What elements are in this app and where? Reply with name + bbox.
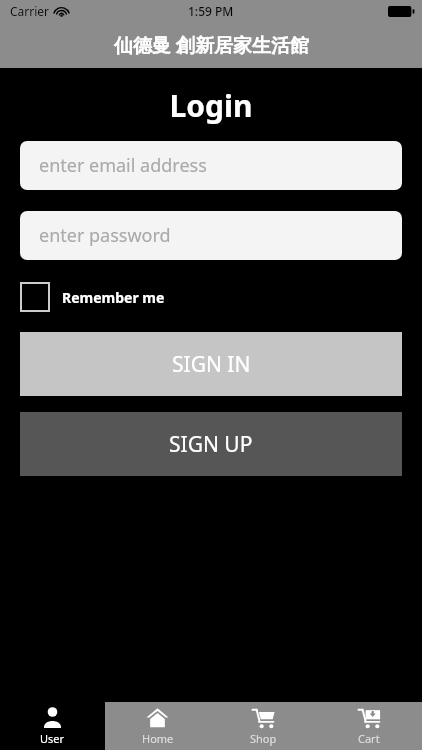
staticText: Remember me xyxy=(62,288,165,307)
staticText: 1:59 PM xyxy=(188,3,234,19)
button[interactable]: Home xyxy=(105,702,210,750)
staticText: Home xyxy=(142,731,174,746)
staticText: SIGN IN xyxy=(172,350,251,379)
button[interactable]: Shop xyxy=(210,702,316,750)
button[interactable]: User xyxy=(0,702,105,750)
staticText: Login xyxy=(0,85,422,126)
staticText: Shop xyxy=(250,731,277,746)
button[interactable]: Cart xyxy=(316,702,422,750)
staticText: Carrier xyxy=(10,3,50,19)
staticText: 仙德曼 創新居家生活館 xyxy=(114,32,309,58)
button[interactable]: SIGN UP xyxy=(20,412,402,476)
staticText: SIGN UP xyxy=(169,430,253,459)
button[interactable]: Remember me xyxy=(20,282,165,312)
button[interactable]: enter password xyxy=(20,211,402,260)
staticText: enter password xyxy=(39,223,171,248)
staticText: Cart xyxy=(358,731,380,746)
staticText: enter email address xyxy=(39,153,207,178)
button[interactable]: SIGN IN xyxy=(20,332,402,396)
button[interactable]: enter email address xyxy=(20,141,402,190)
staticText: User xyxy=(40,731,65,746)
